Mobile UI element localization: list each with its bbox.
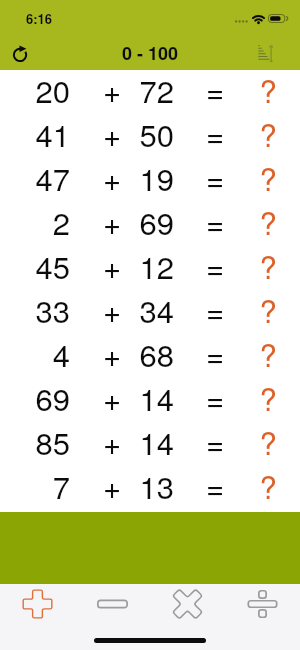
staticText: 47 xyxy=(2,155,70,199)
staticText: = xyxy=(185,155,245,199)
button[interactable]: 47 xyxy=(0,158,300,202)
button[interactable]: 41 xyxy=(0,114,300,158)
staticText: ? xyxy=(238,243,298,287)
button[interactable]: 69 xyxy=(0,378,300,422)
button[interactable]: 20 xyxy=(0,70,300,114)
staticText: 4 xyxy=(2,331,70,375)
staticText: ? xyxy=(238,287,298,331)
staticText: + xyxy=(82,375,142,419)
staticText: 41 xyxy=(2,111,70,155)
staticText: + xyxy=(82,419,142,463)
staticText: 45 xyxy=(2,243,70,287)
staticText: 7 xyxy=(2,463,70,507)
staticText: + xyxy=(82,243,142,287)
button[interactable]: Addition xyxy=(0,584,75,624)
staticText: = xyxy=(185,463,245,507)
staticText: ? xyxy=(238,199,298,243)
staticText: = xyxy=(185,67,245,111)
staticText: = xyxy=(185,331,245,375)
button[interactable]: 2 xyxy=(0,202,300,246)
staticText: = xyxy=(185,419,245,463)
staticText: 0 - 100 xyxy=(122,40,179,66)
staticText: = xyxy=(185,375,245,419)
staticText: 34 xyxy=(106,287,174,331)
staticText: + xyxy=(82,67,142,111)
staticText: 33 xyxy=(2,287,70,331)
staticText: + xyxy=(82,331,142,375)
staticText: + xyxy=(82,111,142,155)
staticText: + xyxy=(82,463,142,507)
staticText: 14 xyxy=(106,375,174,419)
button[interactable]: 7 xyxy=(0,466,300,510)
staticText: + xyxy=(82,199,142,243)
staticText: 85 xyxy=(2,419,70,463)
button[interactable]: Multiplication xyxy=(150,584,225,624)
staticText: 69 xyxy=(2,375,70,419)
staticText: ? xyxy=(238,463,298,507)
staticText: = xyxy=(185,243,245,287)
staticText: 6:16 xyxy=(26,9,53,28)
staticText: 12 xyxy=(106,243,174,287)
staticText: 2 xyxy=(2,199,70,243)
staticText: ? xyxy=(238,67,298,111)
button[interactable]: Division xyxy=(225,584,300,624)
staticText: + xyxy=(82,287,142,331)
staticText: ? xyxy=(238,419,298,463)
button[interactable]: Subtraction xyxy=(75,584,150,624)
staticText: ? xyxy=(238,111,298,155)
button[interactable]: 33 xyxy=(0,290,300,334)
staticText: 69 xyxy=(106,199,174,243)
staticText: + xyxy=(82,155,142,199)
staticText: ? xyxy=(238,155,298,199)
staticText: 50 xyxy=(106,111,174,155)
staticText: = xyxy=(185,111,245,155)
button[interactable]: 4 xyxy=(0,334,300,378)
staticText: 68 xyxy=(106,331,174,375)
staticText: 20 xyxy=(2,67,70,111)
staticText: 13 xyxy=(106,463,174,507)
button[interactable]: 85 xyxy=(0,422,300,466)
staticText: = xyxy=(185,199,245,243)
button[interactable]: Refresh xyxy=(4,37,36,69)
staticText: ? xyxy=(238,375,298,419)
button[interactable]: 45 xyxy=(0,246,300,290)
staticText: 14 xyxy=(106,419,174,463)
staticText: ? xyxy=(238,331,298,375)
staticText: = xyxy=(185,287,245,331)
staticText: 19 xyxy=(106,155,174,199)
staticText: 72 xyxy=(106,67,174,111)
button[interactable]: Statistics xyxy=(250,37,282,69)
